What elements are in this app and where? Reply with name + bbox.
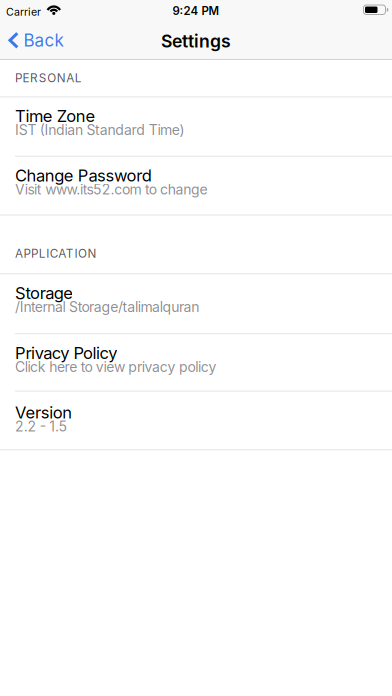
button[interactable]: Time Zone (0, 96, 392, 155)
button[interactable]: Change Password (0, 155, 392, 214)
staticText: Storage (15, 283, 73, 303)
staticText: APPLICATION (15, 246, 96, 261)
staticText: /Internal Storage/talimalquran (15, 298, 199, 315)
staticText: Version (15, 402, 72, 422)
staticText: PERSONAL (15, 71, 82, 85)
staticText: Settings (161, 30, 231, 52)
button[interactable]: Privacy Policy (0, 333, 392, 390)
staticText: Privacy Policy (15, 343, 117, 363)
staticText: Change Password (15, 165, 152, 185)
staticText: Visit www.its52.com to change (15, 181, 208, 198)
staticText: 2.2 - 1.5 (15, 418, 68, 435)
button[interactable]: Storage (0, 273, 392, 333)
staticText: Carrier (6, 5, 41, 18)
button[interactable]: Back (8, 30, 63, 51)
staticText: 9:24 PM (172, 4, 219, 18)
staticText: Click here to view privacy policy (15, 358, 216, 375)
staticText: Back (23, 30, 63, 51)
staticText: Time Zone (15, 106, 95, 126)
staticText: IST (Indian Standard Time) (15, 121, 184, 138)
